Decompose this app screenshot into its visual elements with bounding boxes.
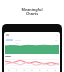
button[interactable] [2, 24, 62, 72]
staticText: Meaningful Charts [21, 7, 43, 16]
